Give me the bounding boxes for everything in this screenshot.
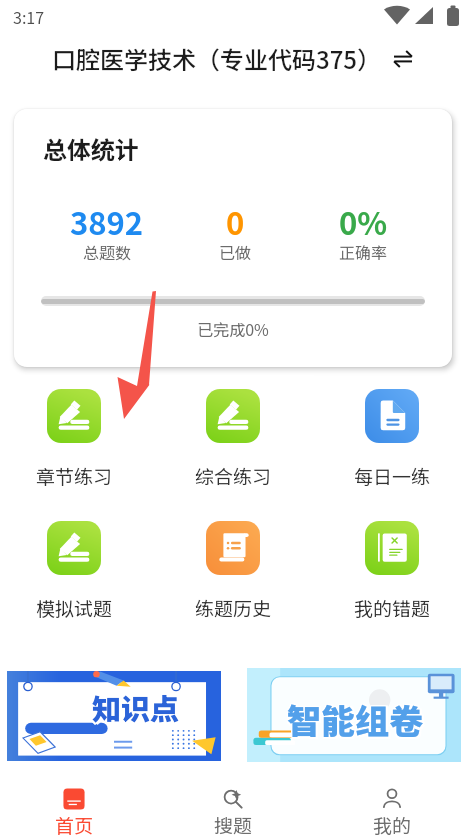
button[interactable]: 切换专业: [392, 48, 414, 70]
staticText: 综合练习: [195, 462, 272, 490]
staticText: 知识点: [91, 688, 179, 730]
staticText: 首页: [55, 811, 94, 839]
button[interactable]: 章节练习: [24, 389, 124, 490]
button[interactable]: 模拟试题: [24, 521, 124, 622]
staticText: 正确率: [339, 240, 388, 263]
button[interactable]: 知识点: [7, 671, 221, 761]
staticText: 0%: [339, 199, 388, 244]
staticText: 智能组卷: [286, 694, 422, 743]
staticText: 智能组卷: [286, 697, 422, 746]
button[interactable]: 综合练习: [183, 389, 283, 490]
staticText: 总体统计: [43, 131, 139, 166]
staticText: 知识点: [92, 685, 180, 727]
button[interactable]: 我的: [352, 762, 432, 840]
button[interactable]: 搜题: [193, 762, 273, 840]
staticText: 知识点: [92, 688, 180, 730]
staticText: 知识点: [91, 685, 179, 727]
staticText: 模拟试题: [36, 594, 113, 622]
button[interactable]: 我的错题: [342, 521, 442, 622]
staticText: 智能组卷: [286, 695, 422, 744]
button[interactable]: 练题历史: [183, 521, 283, 622]
staticText: 智能组卷: [289, 695, 425, 744]
button[interactable]: 首页: [34, 762, 114, 840]
staticText: 3892: [70, 199, 144, 244]
staticText: 智能组卷: [289, 694, 425, 743]
button[interactable]: 总体统计: [14, 109, 452, 367]
button[interactable]: 每日一练: [342, 389, 442, 490]
staticText: 知识点: [92, 686, 180, 728]
staticText: 知识点: [94, 686, 182, 728]
staticText: 我的错题: [354, 594, 431, 622]
staticText: 知识点: [94, 688, 182, 730]
staticText: 知识点: [94, 685, 182, 727]
staticText: 章节练习: [36, 462, 113, 490]
staticText: 搜题: [214, 811, 253, 839]
staticText: 智能组卷: [287, 694, 423, 743]
staticText: 已做: [219, 240, 252, 263]
staticText: 知识点: [91, 686, 179, 728]
staticText: 智能组卷: [289, 697, 425, 746]
staticText: 每日一练: [354, 462, 431, 490]
staticText: 总题数: [83, 240, 132, 263]
staticText: 我的: [373, 811, 412, 839]
button[interactable]: 智能组卷: [247, 668, 461, 765]
staticText: 已完成0%: [14, 317, 452, 340]
staticText: 练题历史: [195, 594, 272, 622]
staticText: 口腔医学技术（专业代码375）: [52, 41, 382, 76]
staticText: 3:17: [13, 5, 45, 28]
staticText: 智能组卷: [287, 697, 423, 746]
staticText: 智能组卷: [287, 695, 423, 744]
staticText: 0: [226, 199, 245, 244]
